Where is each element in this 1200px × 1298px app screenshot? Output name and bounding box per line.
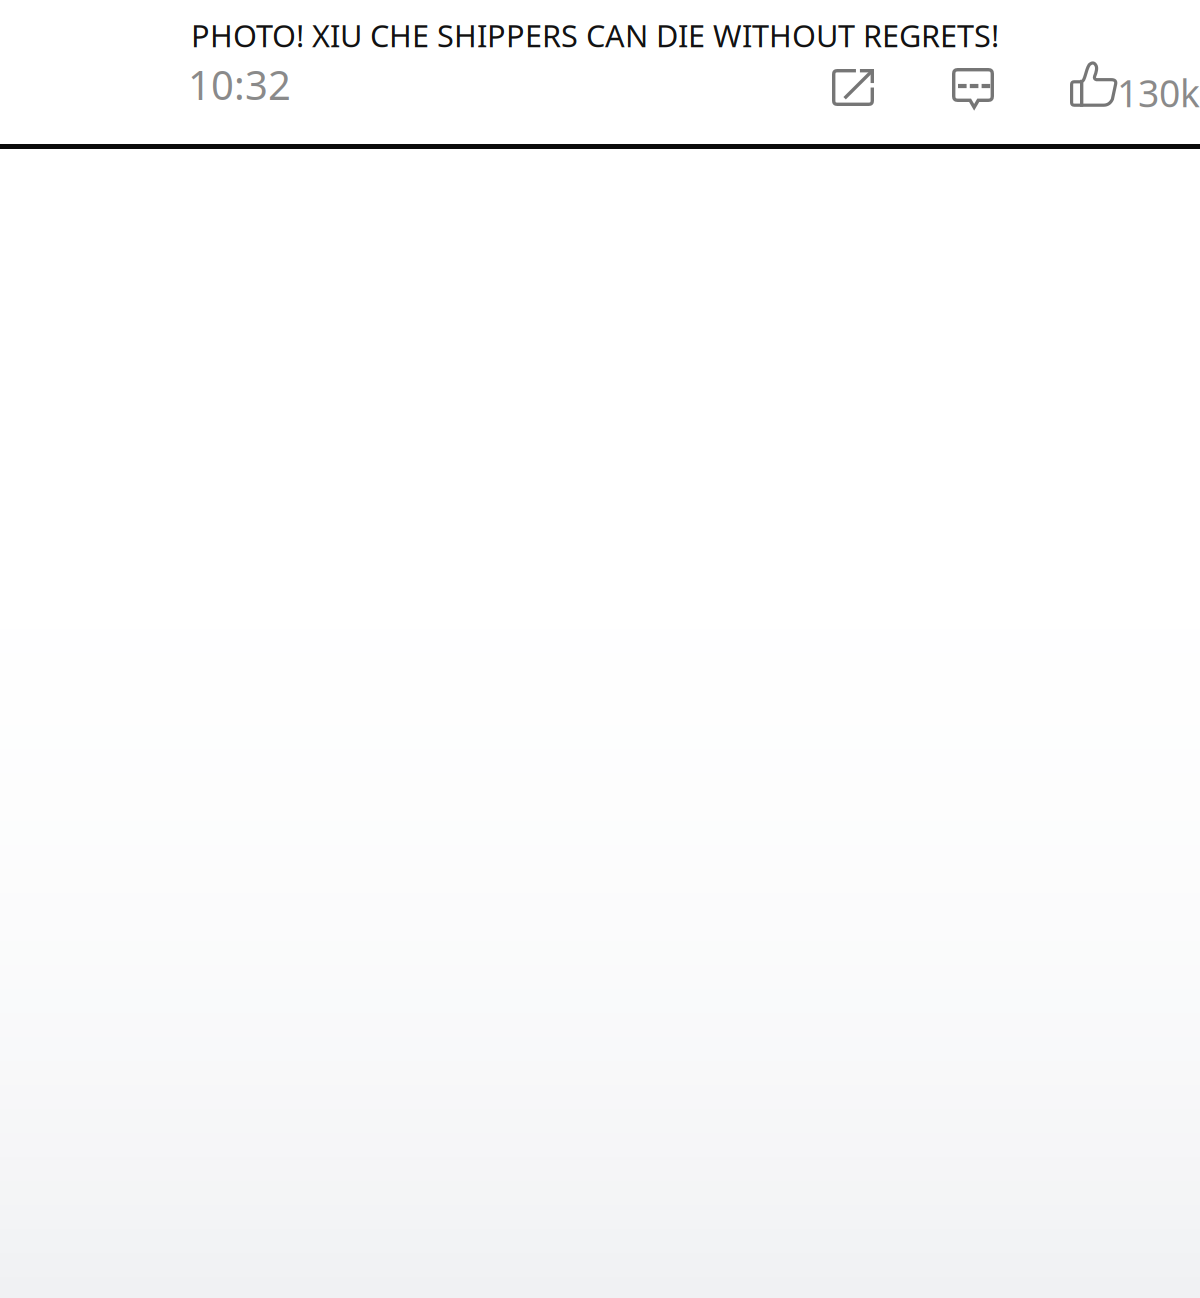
- button[interactable]: Share: [818, 55, 888, 120]
- button[interactable]: 10:32: [186, 48, 293, 121]
- staticText: 130k: [1117, 68, 1200, 118]
- button[interactable]: PHOTO! XIU CHE SHIPPERS CAN DIE WITHOUT …: [189, 9, 1001, 62]
- staticText: 10:32: [188, 58, 291, 111]
- staticText: PHOTO! XIU CHE SHIPPERS CAN DIE WITHOUT …: [191, 15, 999, 56]
- button[interactable]: Comments: [938, 54, 1008, 123]
- button[interactable]: 130k: [1070, 49, 1200, 119]
